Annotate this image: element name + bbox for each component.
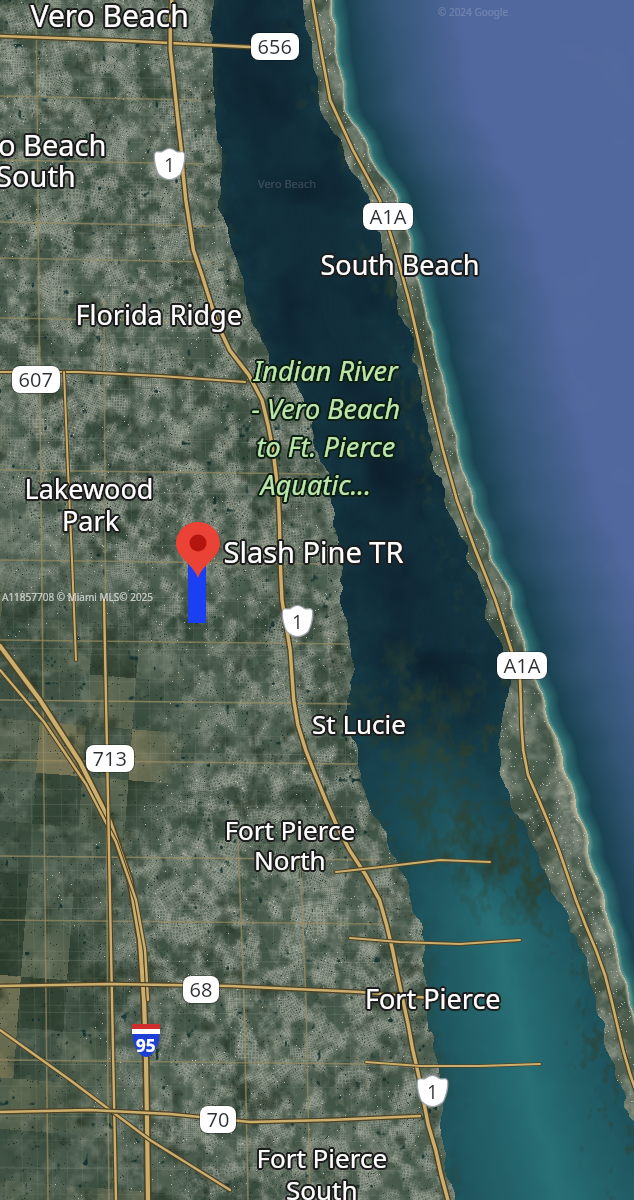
button[interactable]: Satellite map near Slash Pine TR, Fort P… (0, 0, 634, 1200)
